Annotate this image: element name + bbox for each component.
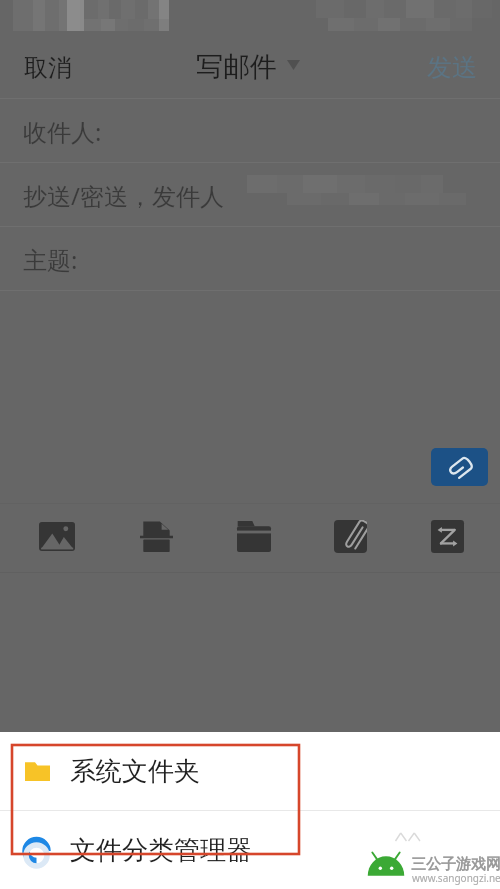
staticText: 系统文件夹 xyxy=(70,755,200,788)
staticText: 主题: xyxy=(23,243,78,276)
button[interactable]: 抄送/密送，发件人 xyxy=(0,163,500,227)
staticText: 写邮件 xyxy=(196,50,277,84)
button[interactable]: 收件人: xyxy=(0,99,500,163)
button[interactable]: 写邮件 xyxy=(188,42,308,92)
button[interactable]: 系统文件夹 xyxy=(0,732,500,810)
staticText: www.sangongzi.net xyxy=(412,871,500,885)
button[interactable]: Attachment xyxy=(326,512,375,561)
button[interactable]: Insert picture xyxy=(31,514,83,559)
button[interactable]: 主题: xyxy=(0,227,500,291)
button[interactable]: Scan document xyxy=(132,513,181,560)
button[interactable]: Add attachment xyxy=(431,448,488,486)
button[interactable]: 文件分类管理器 xyxy=(0,811,500,889)
staticText: 抄送/密送，发件人 xyxy=(23,179,224,212)
button[interactable]: Choose folder xyxy=(229,513,279,560)
staticText: 三公子游戏网 xyxy=(411,855,500,874)
staticText: 文件分类管理器 xyxy=(70,834,252,867)
button[interactable]: 取消 xyxy=(10,43,86,93)
button[interactable]: Large file transfer xyxy=(423,512,472,561)
staticText: 发送 xyxy=(427,52,477,83)
button[interactable]: 发送 xyxy=(413,42,491,93)
staticText: 取消 xyxy=(24,53,72,83)
staticText: 收件人: xyxy=(23,115,102,148)
